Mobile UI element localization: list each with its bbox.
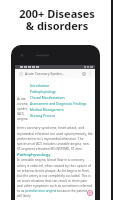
staticText: (ACS, or: [17, 112, 28, 116]
button[interactable]: Clinical Manifestations: [30, 95, 93, 99]
staticText: terms coronary syndrome, heart attack, a…: [17, 126, 93, 151]
staticText: Introduction: [30, 83, 50, 87]
staticText: Clinical Manifestations: [30, 95, 65, 99]
button[interactable]: Medical Management: [30, 107, 93, 111]
button[interactable]: Highlight: [87, 190, 93, 196]
button[interactable]: Nursing Process: [30, 113, 93, 117]
button[interactable]: Pathophysiology: [30, 89, 93, 93]
staticText: Pathophysiology: [17, 152, 51, 158]
staticText: Pathophysiology: [30, 89, 56, 93]
staticText: angina: [17, 117, 28, 121]
button[interactable]: Assessment and Diagnostic Findings: [30, 101, 93, 105]
button[interactable]: Introduction: [30, 83, 93, 87]
staticText: Acute: [17, 97, 26, 101]
staticText: In unstable angina, blood flow in a coro…: [17, 158, 93, 198]
staticText: Medical Management: [30, 107, 64, 111]
button[interactable]: Acute Coronary Syndro...: [15, 69, 95, 78]
staticText: coronary: [17, 102, 28, 106]
staticText: syndrome: [17, 107, 28, 111]
staticText: Acute Coronary Syndro...: [25, 71, 65, 76]
staticText: Assessment and Diagnostic Findings: [30, 101, 87, 105]
staticText: 200+ Diseases & disorders: [19, 6, 95, 33]
staticText: Nursing Process: [30, 113, 56, 117]
